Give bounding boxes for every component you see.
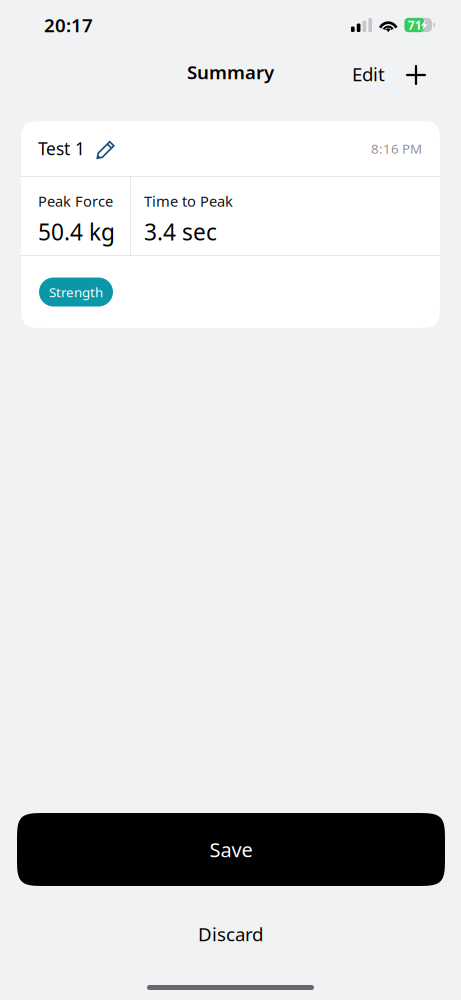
button[interactable]: Rename test <box>96 138 116 158</box>
staticText: Discard <box>198 922 263 946</box>
staticText: 20:17 <box>44 13 93 37</box>
staticText: Edit <box>352 62 385 86</box>
staticText: Summary <box>187 60 274 84</box>
staticText: Time to Peak <box>144 191 233 211</box>
staticText: Test 1 <box>38 137 85 160</box>
button[interactable]: Add <box>403 59 429 85</box>
staticText: 50.4 kg <box>38 217 115 247</box>
staticText: 71 <box>408 17 422 33</box>
button[interactable]: Edit <box>347 51 390 93</box>
button[interactable]: Save <box>17 813 445 886</box>
staticText: 3.4 sec <box>144 217 217 247</box>
staticText: Peak Force <box>38 191 113 211</box>
button[interactable]: Discard <box>0 919 461 949</box>
staticText: Save <box>209 836 252 863</box>
button[interactable]: Strength <box>39 277 113 306</box>
staticText: 8:16 PM <box>371 140 422 157</box>
staticText: Strength <box>49 283 103 301</box>
